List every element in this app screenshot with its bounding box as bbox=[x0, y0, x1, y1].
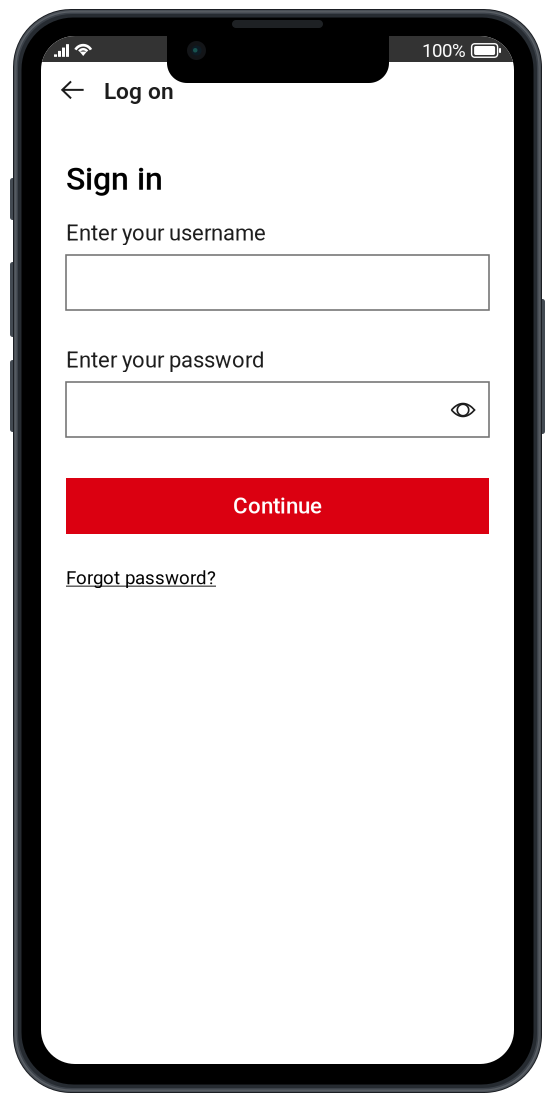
staticText: Forgot password? bbox=[66, 567, 216, 589]
staticText: Log on bbox=[104, 78, 174, 105]
button[interactable]: Back bbox=[46, 67, 100, 113]
staticText: Enter your username bbox=[66, 220, 266, 246]
button[interactable]: Continue bbox=[66, 478, 489, 534]
staticText: Enter your password bbox=[66, 347, 264, 373]
staticText: Sign in bbox=[66, 160, 163, 197]
staticText: Continue bbox=[233, 493, 322, 519]
button[interactable]: Forgot password? bbox=[66, 567, 216, 589]
button[interactable]: Show password bbox=[441, 388, 485, 432]
staticText: 100% bbox=[422, 40, 466, 61]
